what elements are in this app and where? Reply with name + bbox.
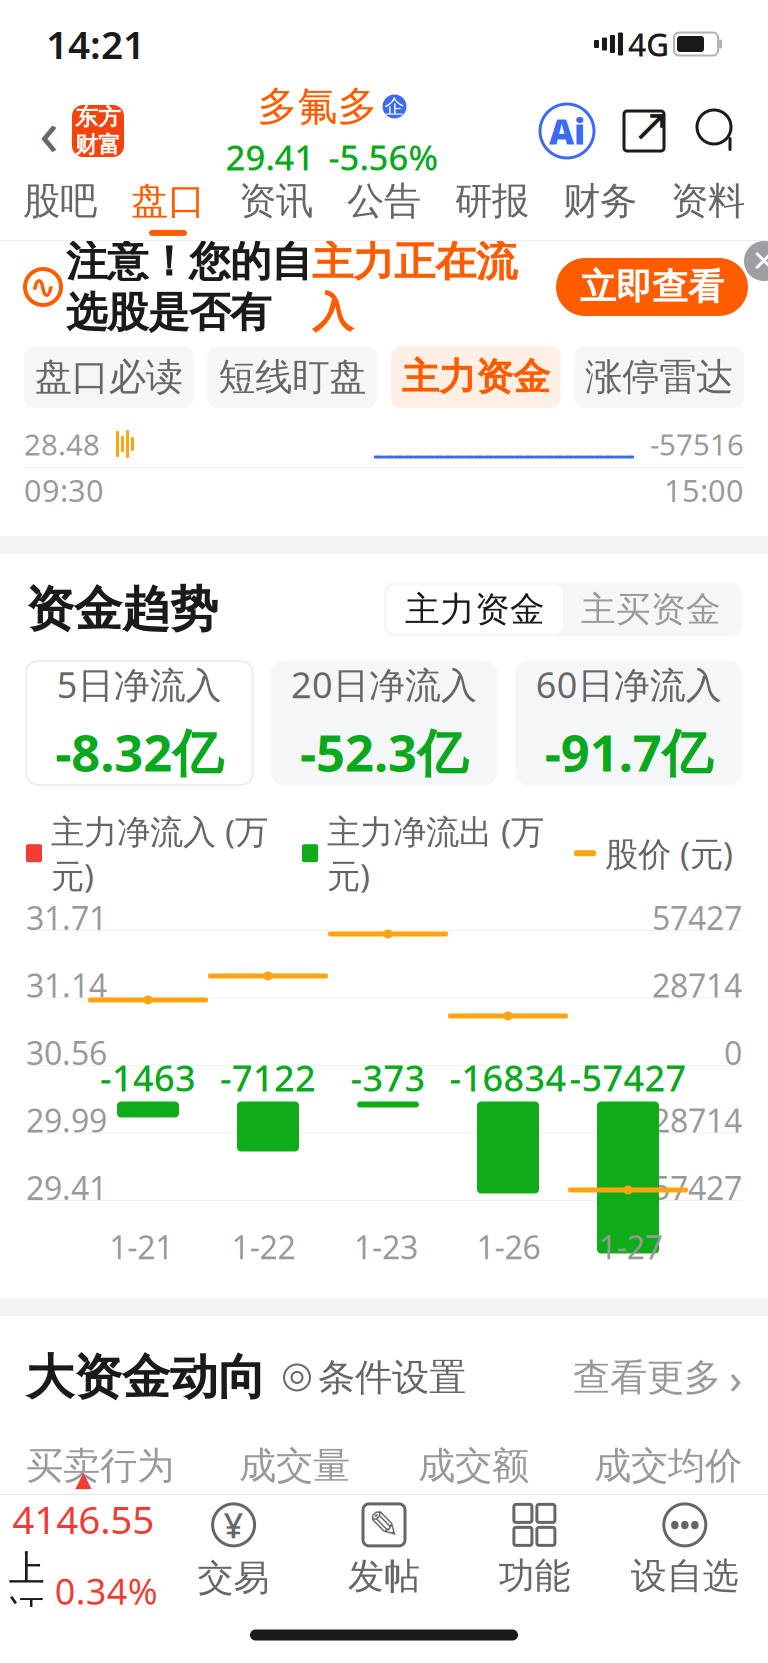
staticText: 大资金动向 [26,1348,266,1407]
staticText: 主力被套 [26,1515,186,1564]
staticText: 立即查看 [580,265,724,309]
staticText: 30.56 [26,1031,107,1074]
staticText: ¥ [224,1502,244,1548]
button[interactable]: 公告 [330,175,438,239]
staticText: ••• [670,1507,700,1543]
staticText: 资讯 [239,178,313,224]
staticText: -1463 [100,1054,196,1101]
staticText: 交易 [198,1556,270,1600]
staticText: › [729,1349,742,1406]
button[interactable]: 60日净流入 [515,661,742,785]
button[interactable]: ✎ [309,1504,459,1598]
staticText: 东方 [75,103,121,131]
staticText: 31.14 [26,964,107,1006]
staticText: 4G [628,23,669,65]
staticText: 查看更多 [573,1354,721,1400]
button[interactable]: 分享 [620,107,668,155]
staticText: 1-26 [476,1225,540,1268]
staticText: 57427 [652,896,742,939]
button[interactable]: 盘口必读 [24,346,193,408]
staticText: -5.56% [328,134,438,180]
button[interactable]: ∿ [0,241,768,333]
staticText: 主力净流出 (万元) [327,809,544,897]
staticText: 5日净流入 [57,660,222,708]
staticText: 买卖行为 [26,1443,174,1489]
staticText: -91.7亿 [545,718,713,785]
staticText: -52.3亿 [300,718,468,785]
button[interactable]: 股吧 [6,175,114,239]
button[interactable]: ▲ [8,1467,158,1635]
staticText: 成交额 [418,1443,529,1489]
staticText: 31.71 [26,896,107,939]
staticText: 短线盯盘 [218,354,366,400]
staticText: 条件设置 [318,1354,466,1400]
staticText: 29.99 [26,1099,107,1141]
button[interactable]: 研报 [438,175,546,239]
staticText: 主力资金 [405,588,545,631]
staticText: -57516 [650,424,744,463]
button[interactable]: 短线盯盘 [207,346,377,408]
staticText: ✎ [368,1504,399,1546]
staticText: 0.34% [55,1567,158,1615]
button[interactable]: 返回 [26,101,72,161]
staticText: ↗ [632,99,670,151]
staticText: 09:30 [24,470,104,510]
button[interactable]: 东方财富 [72,105,124,157]
staticText: 14:21 [46,18,145,70]
staticText: -16834 [449,1054,566,1101]
staticText: 15:00 [664,470,744,510]
button[interactable]: 功能 [459,1504,610,1598]
staticText: 资料 [671,178,745,224]
staticText: 4146.55 [12,1493,154,1544]
button[interactable]: ¥ [158,1502,309,1600]
staticText: -28714 [642,1099,742,1141]
staticText: -57427 [642,1166,742,1209]
button[interactable]: 资讯 [222,175,330,239]
staticText: 1-22 [232,1225,296,1268]
button[interactable]: ••• [610,1504,760,1598]
button[interactable]: AI 助手 [540,104,594,158]
staticText: 企 [384,94,404,119]
button[interactable]: 5日净流入 [26,661,253,785]
staticText: 1-27 [599,1225,663,1268]
button[interactable]: 资料 [654,175,762,239]
staticText: ∿ [29,269,56,305]
button[interactable]: 盘口 [114,175,222,239]
button[interactable]: 主力资金 [387,585,563,633]
staticText: 注意！您的自选股是否有 [66,236,312,338]
staticText: 研报 [455,178,529,224]
staticText: ‹ [39,88,59,173]
staticText: 盘口 [131,178,205,224]
staticText: 成交量 [239,1443,350,1489]
staticText: 29.41 [225,134,314,180]
staticText: 主力净流入 (万元) [51,809,268,897]
staticText: 设自选 [631,1554,739,1598]
staticText: 60日净流入 [536,660,722,708]
staticText: ▲ [75,1467,91,1491]
staticText: 20日净流入 [291,660,477,708]
button[interactable]: 关闭 [744,241,768,281]
staticText: -8.32亿 [55,718,223,785]
staticText: 0 [724,1031,742,1074]
staticText: 1-23 [354,1225,418,1268]
staticText: 功能 [498,1554,570,1598]
staticText: -57427 [569,1054,686,1101]
staticText: 成交均价 [594,1443,742,1489]
staticText: ✕ [751,244,768,278]
staticText: 涨停雷达 [585,354,733,400]
button[interactable]: 主力资金 [391,346,560,408]
staticText: 发帖 [348,1554,420,1598]
button[interactable]: 主买资金 [563,585,739,633]
button[interactable]: 20日净流入 [271,661,497,785]
staticText: 财富 [75,131,121,159]
staticText: -373 [350,1054,425,1101]
staticText: 资金趋势 [26,580,218,639]
staticText: 28.48 [24,424,100,463]
button[interactable]: 查看更多 [573,1349,742,1406]
staticText: 29.41 [26,1166,107,1209]
button[interactable]: 搜索 [694,107,742,155]
button[interactable]: 财务 [546,175,654,239]
button[interactable]: 涨停雷达 [574,346,744,408]
button[interactable]: 条件设置 [266,1354,466,1400]
staticText: 股价 (元) [605,831,733,875]
